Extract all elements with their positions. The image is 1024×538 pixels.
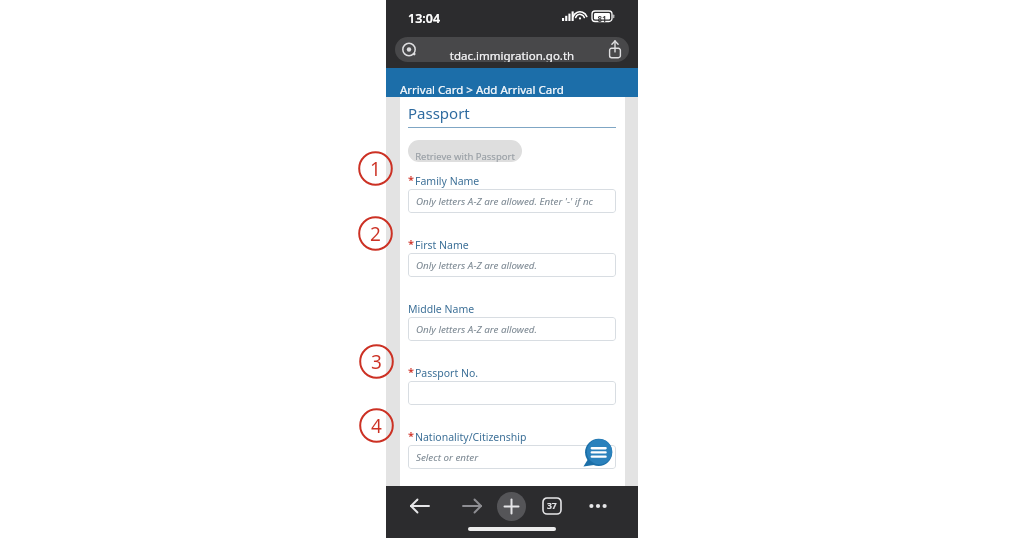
staticText: * bbox=[408, 236, 414, 251]
staticText: Nationality/Citizenship bbox=[415, 430, 527, 444]
staticText: Retrieve with Passport bbox=[408, 150, 522, 162]
staticText: tdac.immigration.go.th bbox=[395, 48, 629, 62]
button[interactable]: Back bbox=[396, 490, 444, 522]
button[interactable]: Chat support bbox=[581, 437, 615, 471]
button[interactable]: Only letters A-Z are allowed. bbox=[408, 317, 616, 341]
button[interactable]: Retrieve with Passport bbox=[408, 140, 522, 162]
staticText: 4 bbox=[371, 413, 382, 439]
button[interactable] bbox=[408, 381, 616, 405]
button[interactable]: Forward bbox=[448, 490, 496, 522]
staticText: Passport No. bbox=[415, 366, 479, 380]
button[interactable]: Arrival Card > Add Arrival Card bbox=[386, 68, 638, 97]
staticText: 81 bbox=[594, 13, 610, 24]
staticText: 1 bbox=[370, 156, 381, 182]
staticText: Passport bbox=[408, 103, 470, 123]
staticText: 37 bbox=[547, 500, 557, 512]
staticText: Only letters A-Z are allowed. Enter '-' … bbox=[416, 195, 594, 208]
staticText: 3 bbox=[371, 349, 382, 375]
staticText: Arrival Card > Add Arrival Card bbox=[400, 82, 564, 98]
button[interactable]: Select or enter bbox=[408, 445, 616, 469]
staticText: Only letters A-Z are allowed. bbox=[416, 259, 537, 272]
staticText: * bbox=[408, 428, 414, 443]
staticText: * bbox=[408, 172, 414, 187]
button[interactable]: New tab bbox=[497, 492, 526, 521]
button[interactable]: tdac.immigration.go.th bbox=[395, 37, 629, 62]
button[interactable]: Tabs, 37 open bbox=[539, 493, 565, 519]
button[interactable]: Only letters A-Z are allowed. bbox=[408, 253, 616, 277]
staticText: * bbox=[408, 364, 414, 379]
staticText: Middle Name bbox=[408, 302, 475, 316]
staticText: First Name bbox=[415, 238, 469, 252]
staticText: 2 bbox=[370, 221, 381, 247]
staticText: Family Name bbox=[415, 174, 480, 188]
staticText: Select or enter bbox=[416, 451, 479, 464]
button[interactable]: More options bbox=[578, 496, 618, 516]
button[interactable]: Only letters A-Z are allowed. Enter '-' … bbox=[408, 189, 616, 213]
staticText: Only letters A-Z are allowed. bbox=[416, 323, 537, 336]
staticText: 13:04 bbox=[408, 10, 441, 27]
